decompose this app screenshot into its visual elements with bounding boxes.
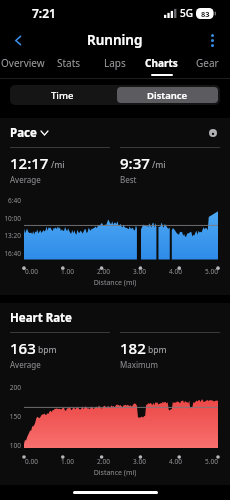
button[interactable]: More options bbox=[200, 28, 224, 52]
staticText: 6:40 bbox=[8, 196, 21, 205]
staticText: Time bbox=[51, 89, 74, 102]
staticText: 163 bbox=[10, 338, 36, 358]
button[interactable]: Stats bbox=[46, 53, 92, 79]
staticText: bpm bbox=[148, 344, 167, 356]
button[interactable]: Time bbox=[10, 85, 115, 105]
staticText: 0.00 bbox=[25, 457, 38, 466]
staticText: bpm bbox=[38, 344, 57, 356]
staticText: 1.00 bbox=[61, 267, 74, 276]
staticText: 0.00 bbox=[25, 267, 38, 276]
button[interactable]: Distance bbox=[117, 87, 218, 103]
button[interactable]: Info bbox=[206, 126, 220, 140]
button[interactable]: Pace bbox=[10, 125, 220, 141]
staticText: 12:17 bbox=[10, 153, 49, 173]
staticText: 5.00 bbox=[205, 267, 218, 276]
staticText: 7:21 bbox=[32, 5, 56, 21]
staticText: 150 bbox=[9, 412, 21, 421]
staticText: Heart Rate bbox=[10, 310, 72, 326]
staticText: Laps bbox=[104, 56, 126, 70]
button[interactable]: Gear bbox=[184, 53, 230, 79]
button[interactable]: Overview bbox=[0, 53, 46, 79]
staticText: 16:40 bbox=[4, 249, 21, 258]
staticText: Gear bbox=[196, 56, 219, 70]
staticText: 13:20 bbox=[4, 231, 21, 240]
staticText: Distance bbox=[147, 89, 188, 102]
staticText: Average bbox=[10, 359, 41, 370]
button[interactable]: Back bbox=[6, 28, 30, 52]
staticText: 3.00 bbox=[133, 267, 146, 276]
staticText: Maximum bbox=[120, 359, 158, 370]
staticText: 9:37 bbox=[120, 153, 150, 173]
staticText: Pace bbox=[10, 125, 37, 141]
staticText: 4.00 bbox=[169, 457, 182, 466]
staticText: Stats bbox=[57, 56, 81, 70]
staticText: Running bbox=[87, 31, 143, 49]
staticText: 2.00 bbox=[97, 267, 110, 276]
staticText: Charts bbox=[145, 56, 178, 70]
staticText: 83 bbox=[201, 9, 210, 19]
staticText: 5.00 bbox=[205, 457, 218, 466]
button[interactable]: Charts bbox=[138, 53, 184, 79]
staticText: 1.00 bbox=[61, 457, 74, 466]
staticText: /mi bbox=[152, 159, 166, 171]
staticText: Average bbox=[10, 174, 41, 185]
staticText: Distance (mi) bbox=[0, 468, 230, 478]
staticText: 200 bbox=[9, 383, 21, 392]
staticText: Best bbox=[120, 174, 137, 185]
staticText: 4.00 bbox=[169, 267, 182, 276]
staticText: 100 bbox=[9, 441, 21, 450]
staticText: 182 bbox=[120, 338, 146, 358]
staticText: 10:00 bbox=[4, 214, 21, 223]
button[interactable]: Heart Rate bbox=[10, 310, 220, 326]
staticText: /mi bbox=[51, 159, 65, 171]
staticText: Overview bbox=[1, 56, 45, 70]
staticText: 3.00 bbox=[133, 457, 146, 466]
button[interactable]: Laps bbox=[92, 53, 138, 79]
staticText: Distance (mi) bbox=[0, 278, 230, 288]
staticText: 2.00 bbox=[97, 457, 110, 466]
staticText: 5G bbox=[180, 6, 193, 20]
